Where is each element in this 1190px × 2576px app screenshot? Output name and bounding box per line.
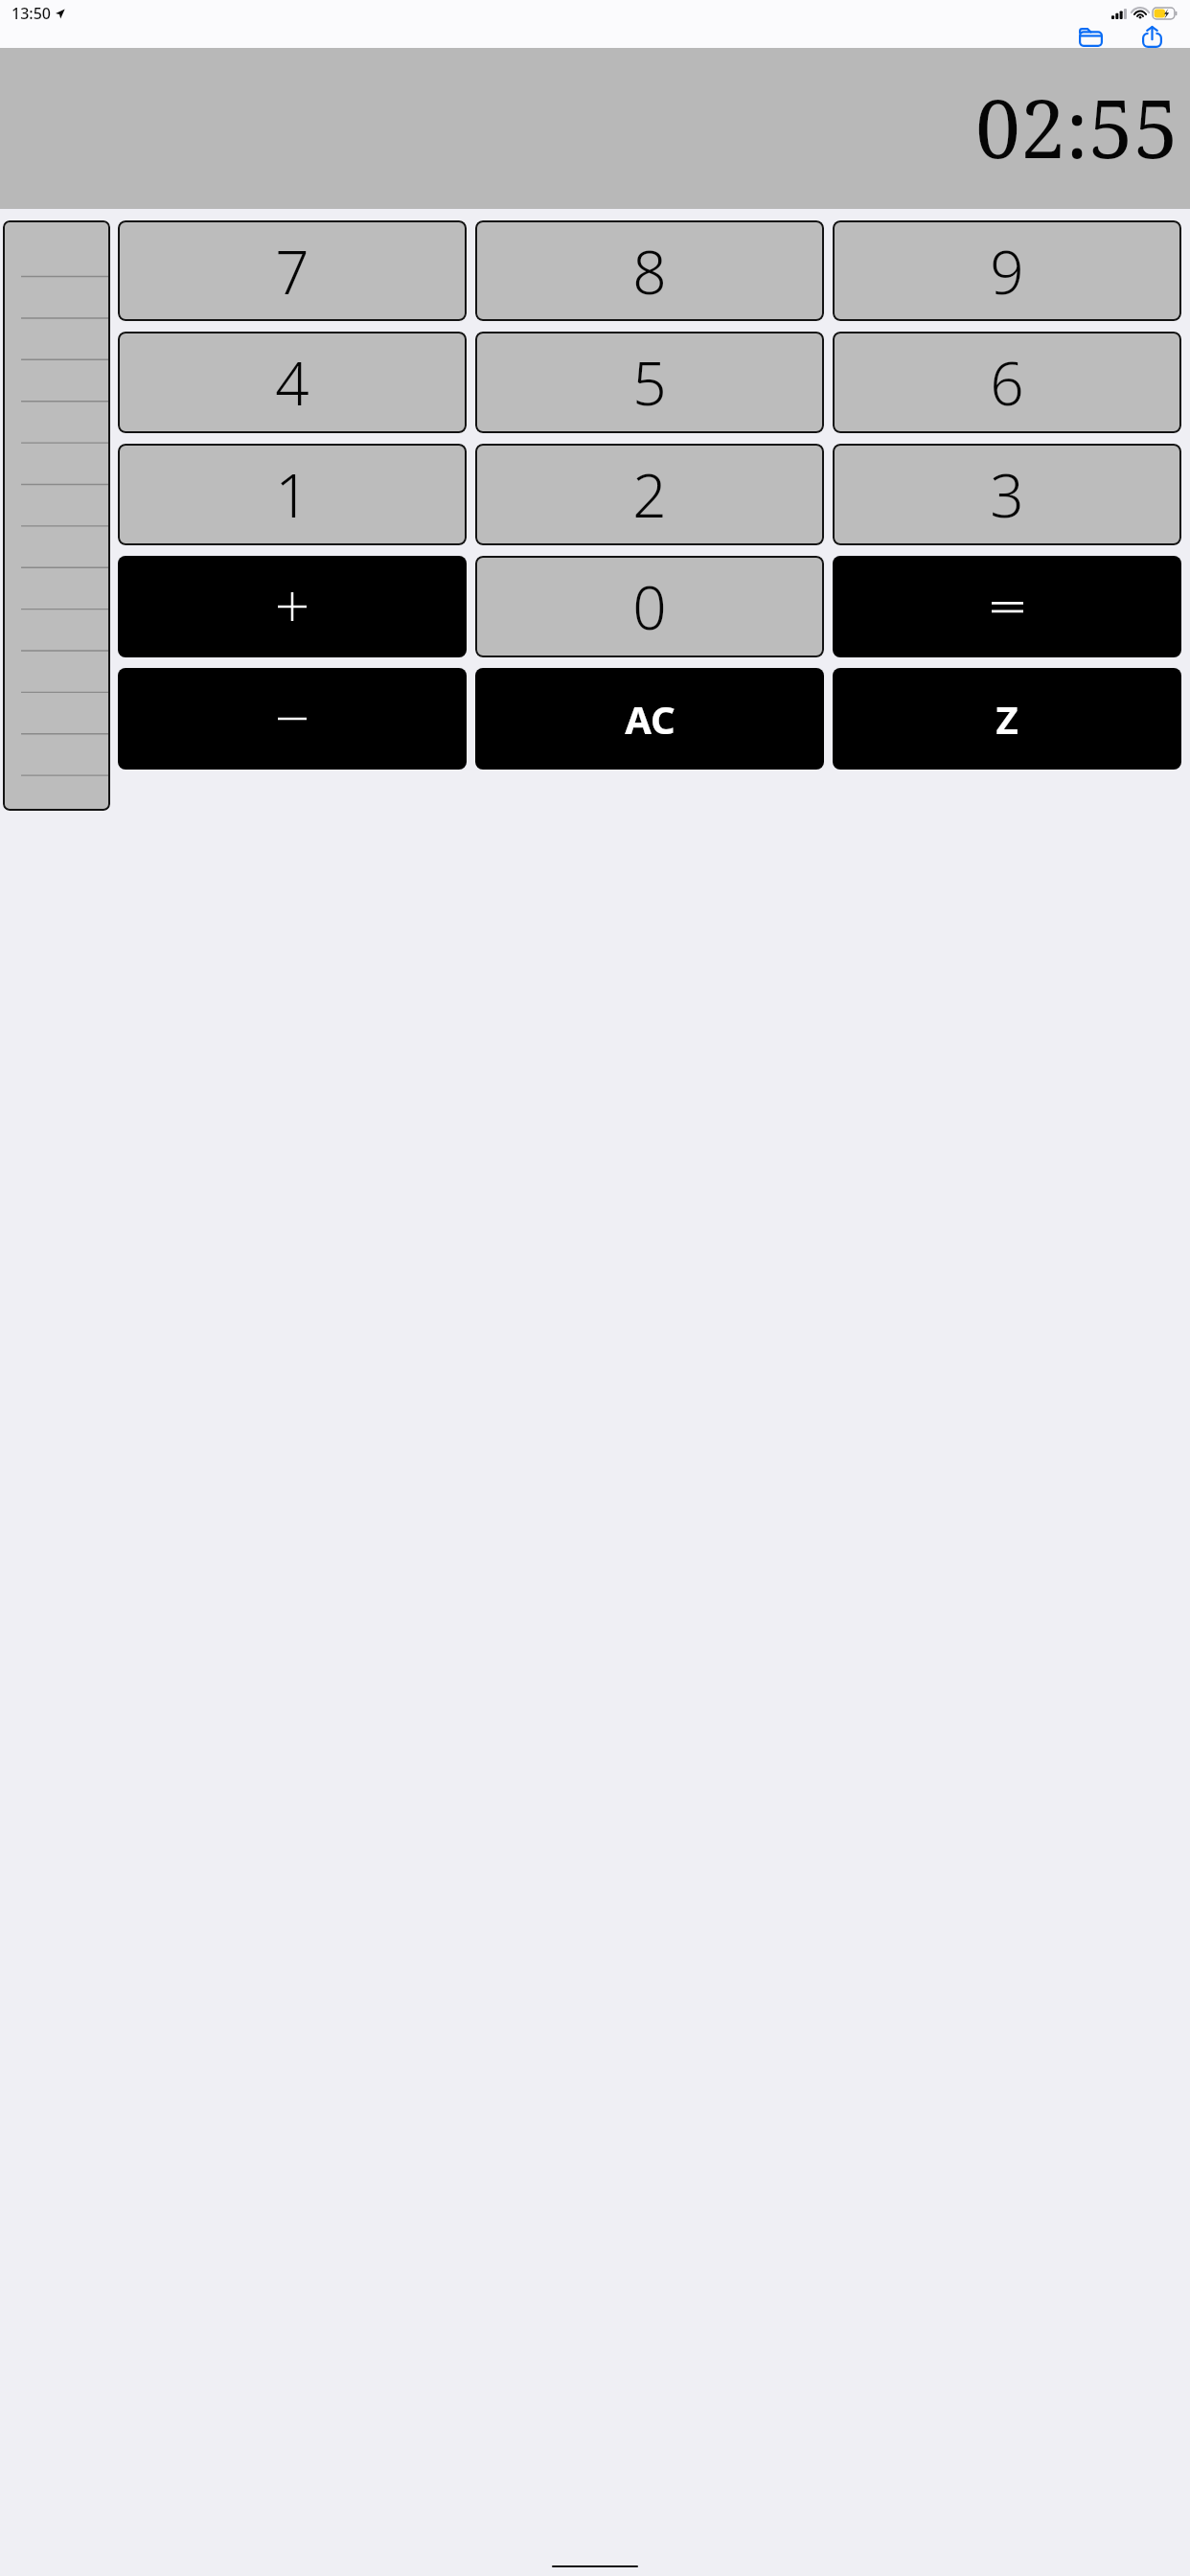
button[interactable]: 9 (833, 220, 1181, 321)
button[interactable]: Minus (118, 668, 467, 770)
button[interactable]: Z (833, 668, 1181, 770)
staticText: 1 (275, 454, 309, 535)
button[interactable]: 6 (833, 332, 1181, 433)
button[interactable]: Share (1127, 26, 1177, 48)
button[interactable] (3, 220, 110, 811)
button[interactable]: Equals (833, 556, 1181, 657)
button[interactable]: 2 (475, 444, 824, 545)
staticText: 02:55 (975, 72, 1179, 181)
staticText: AC (625, 693, 675, 745)
staticText: Z (995, 693, 1018, 745)
button[interactable]: 0 (475, 556, 824, 657)
button[interactable]: Open folder (1064, 26, 1117, 48)
button[interactable]: AC (475, 668, 824, 770)
staticText: 0 (632, 566, 667, 647)
staticText: 13:50 (11, 3, 51, 24)
button[interactable]: 8 (475, 220, 824, 321)
button[interactable]: 5 (475, 332, 824, 433)
staticText: 3 (990, 454, 1024, 535)
button[interactable]: Plus (118, 556, 467, 657)
staticText: 9 (990, 231, 1024, 311)
button[interactable]: 7 (118, 220, 467, 321)
staticText: 2 (632, 454, 667, 535)
staticText: 4 (275, 342, 309, 423)
button[interactable]: 1 (118, 444, 467, 545)
button[interactable]: 3 (833, 444, 1181, 545)
staticText: 7 (275, 231, 309, 311)
staticText: 8 (632, 231, 667, 311)
staticText: 6 (990, 342, 1024, 423)
staticText: 5 (632, 342, 667, 423)
button[interactable]: 4 (118, 332, 467, 433)
